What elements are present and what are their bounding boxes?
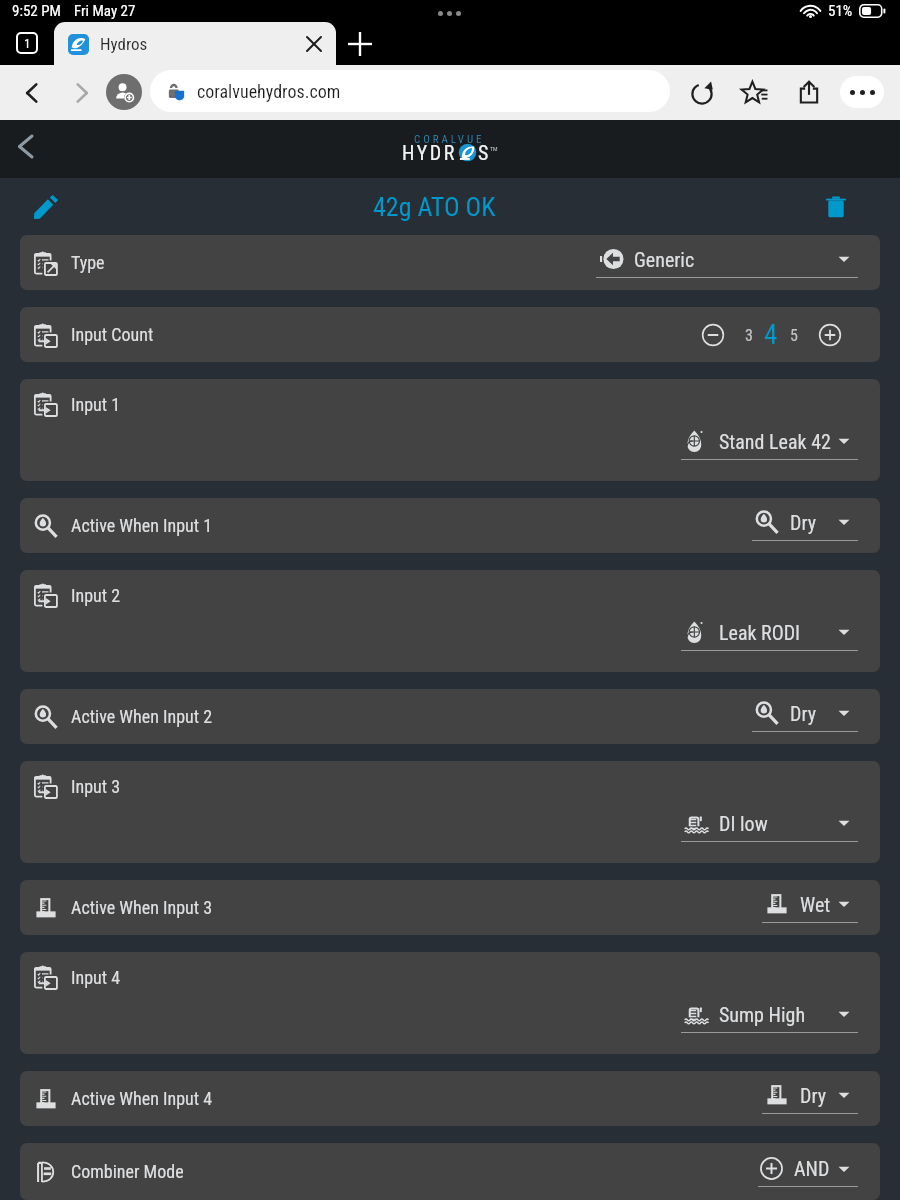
button[interactable]: Type xyxy=(20,235,880,290)
staticText: Dry xyxy=(790,702,817,725)
staticText: S xyxy=(478,141,491,164)
button[interactable]: Wet xyxy=(762,892,858,923)
button[interactable]: Bookmarks xyxy=(740,78,770,108)
button[interactable]: Sump High xyxy=(681,1002,858,1033)
button[interactable]: Forward xyxy=(64,75,100,111)
staticText: TM xyxy=(490,145,498,152)
staticText: Active When Input 2 xyxy=(71,706,213,727)
button[interactable]: Combiner Mode xyxy=(20,1143,880,1200)
staticText: Fri May 27 xyxy=(74,2,136,20)
staticText: Leak RODI xyxy=(719,621,801,644)
button[interactable]: Active When Input 3 xyxy=(20,880,880,935)
staticText: Sump High xyxy=(719,1003,806,1026)
staticText: Input Count xyxy=(71,324,154,345)
staticText: Input 2 xyxy=(71,585,121,606)
staticText: 9:52 PM xyxy=(12,2,61,20)
button[interactable]: Back xyxy=(14,75,50,111)
staticText: coralvuehydros.com xyxy=(197,81,341,102)
button[interactable]: DI low xyxy=(681,811,858,842)
staticText: Active When Input 3 xyxy=(71,897,213,918)
staticText: DI low xyxy=(719,812,768,835)
button[interactable]: Stand Leak 42 xyxy=(681,429,858,460)
staticText: Dry xyxy=(790,511,817,534)
staticText: 3 xyxy=(745,326,753,345)
button[interactable]: Reload xyxy=(688,79,716,107)
staticText: 42g ATO OK xyxy=(373,192,496,222)
staticText: CORALVUE xyxy=(414,133,485,146)
staticText: Type xyxy=(71,252,105,273)
staticText: Generic xyxy=(634,248,695,271)
staticText: Input 3 xyxy=(71,776,121,797)
button[interactable]: Input 2 xyxy=(20,570,880,672)
button[interactable]: Input 1 xyxy=(20,379,880,481)
staticText: Input 4 xyxy=(71,967,121,988)
button[interactable]: AND xyxy=(758,1157,858,1187)
staticText: Input 1 xyxy=(71,394,121,415)
staticText: Dry xyxy=(800,1084,827,1107)
button[interactable]: Back xyxy=(6,127,44,165)
staticText: Wet xyxy=(800,893,831,916)
staticText: 1 xyxy=(24,36,31,51)
staticText: 51% xyxy=(828,2,853,20)
staticText: Hydros xyxy=(100,34,148,54)
button[interactable]: Input 4 xyxy=(20,952,880,1054)
staticText: 5 xyxy=(790,326,798,345)
button[interactable]: Hydros xyxy=(54,22,336,66)
button[interactable]: Close tab xyxy=(306,36,322,52)
button[interactable]: Active When Input 1 xyxy=(20,498,880,553)
staticText: 4 xyxy=(764,319,778,351)
button[interactable]: Dry xyxy=(752,701,858,732)
staticText: Combiner Mode xyxy=(71,1161,184,1182)
staticText: Active When Input 4 xyxy=(71,1088,213,1109)
button[interactable]: Dry xyxy=(762,1083,858,1114)
button[interactable]: Leak RODI xyxy=(681,620,858,651)
button[interactable]: Generic xyxy=(596,247,858,278)
button[interactable]: Profile xyxy=(106,74,142,110)
staticText: AND xyxy=(794,1157,830,1180)
button[interactable]: coralvuehydros.com xyxy=(150,70,670,112)
button[interactable]: Tabs xyxy=(16,32,38,54)
staticText: Stand Leak 42 xyxy=(719,430,831,453)
staticText: Active When Input 1 xyxy=(71,515,213,536)
button[interactable]: Edit xyxy=(28,189,64,225)
button[interactable]: Delete xyxy=(818,189,854,225)
button[interactable]: Input Count xyxy=(20,307,880,362)
staticText: HYDR xyxy=(402,141,458,164)
button[interactable]: Dry xyxy=(752,510,858,541)
button[interactable]: Decrease xyxy=(700,322,726,348)
button[interactable]: Share xyxy=(795,78,823,106)
button[interactable]: More xyxy=(840,76,884,108)
button[interactable]: Increase xyxy=(817,322,843,348)
button[interactable]: Input 3 xyxy=(20,761,880,863)
button[interactable]: New tab xyxy=(346,30,374,58)
button[interactable]: Active When Input 4 xyxy=(20,1071,880,1126)
button[interactable]: Active When Input 2 xyxy=(20,689,880,744)
